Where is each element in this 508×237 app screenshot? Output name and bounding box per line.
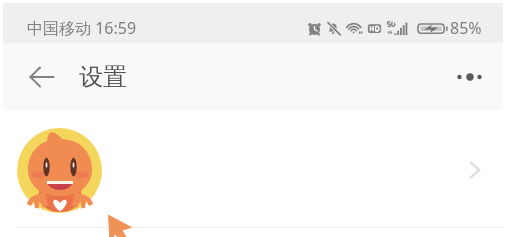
staticText: 设置: [79, 62, 127, 92]
button[interactable]: Back: [25, 60, 59, 94]
button[interactable]: More options: [453, 60, 487, 94]
button[interactable]: [0, 110, 508, 227]
staticText: 85%: [450, 17, 482, 39]
staticText: 中国移动 16:59: [27, 17, 137, 39]
